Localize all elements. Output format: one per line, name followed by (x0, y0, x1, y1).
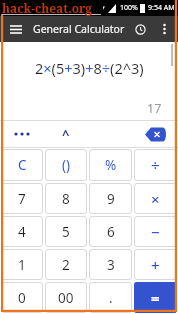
staticText: 2×(5+3)+8÷(2^3) (35, 58, 144, 78)
button[interactable]: () (45, 149, 87, 181)
staticText: = (151, 288, 160, 308)
staticText: 6 (107, 223, 115, 241)
button[interactable]: % (89, 149, 132, 181)
button[interactable]: 6 (89, 216, 132, 247)
staticText: 8 (62, 190, 70, 208)
staticText: 0 (18, 289, 26, 307)
button[interactable]: × (134, 183, 177, 214)
button[interactable]: 4 (1, 216, 43, 247)
staticText: ^ (62, 125, 70, 143)
staticText: × (151, 189, 160, 209)
button[interactable]: 8 (45, 183, 87, 214)
staticText: + (151, 255, 160, 275)
button[interactable]: + (134, 249, 177, 280)
button[interactable]: . (89, 282, 132, 313)
button[interactable]: ^ (44, 121, 88, 147)
staticText: 1 (18, 256, 26, 274)
button[interactable]: C (1, 149, 43, 181)
staticText: 100% (120, 3, 138, 13)
button[interactable]: = (134, 282, 177, 313)
button[interactable]: − (134, 216, 177, 247)
button[interactable]: 2 (45, 249, 87, 280)
button[interactable] (158, 21, 170, 37)
staticText: () (62, 156, 71, 174)
button[interactable] (0, 121, 44, 147)
button[interactable]: 3 (89, 249, 132, 280)
staticText: . (109, 289, 113, 307)
button[interactable]: 9 (89, 183, 132, 214)
button[interactable]: 00 (45, 282, 87, 313)
staticText: hack-cheat.org (2, 0, 93, 16)
staticText: C (18, 156, 27, 174)
staticText: 00 (58, 289, 74, 307)
staticText: 7 (18, 190, 26, 208)
staticText: 9:54 AM (148, 3, 175, 13)
button[interactable] (132, 21, 148, 37)
button[interactable] (133, 121, 178, 147)
staticText: 5 (62, 223, 70, 241)
staticText: ÷ (151, 155, 160, 175)
staticText: % (105, 156, 117, 174)
staticText: 17 (147, 100, 162, 117)
staticText: − (151, 222, 160, 242)
staticText: General Calculator (33, 22, 125, 36)
button[interactable]: 5 (45, 216, 87, 247)
button[interactable]: 0 (1, 282, 43, 313)
button[interactable]: ÷ (134, 149, 177, 181)
button[interactable] (8, 21, 24, 37)
button[interactable]: 1 (1, 249, 43, 280)
button[interactable]: 7 (1, 183, 43, 214)
staticText: 4 (18, 223, 26, 241)
staticText: 2 (62, 256, 70, 274)
staticText: 3 (107, 256, 115, 274)
staticText: 9 (107, 190, 115, 208)
